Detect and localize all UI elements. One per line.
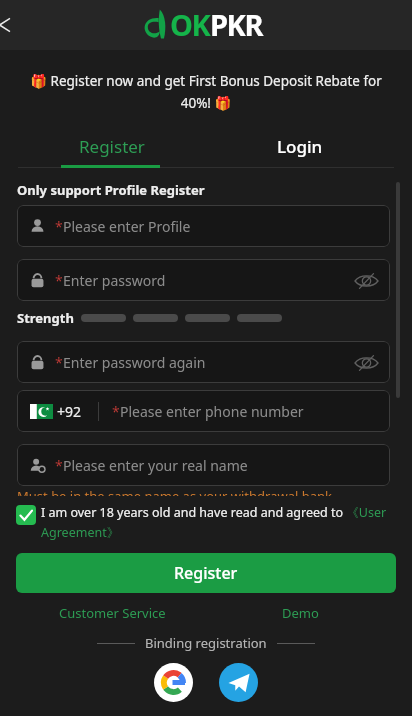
button[interactable]: * [17,444,390,486]
button[interactable]: Show password [353,272,379,289]
button[interactable]: Show password [353,354,379,371]
staticText: Strength [17,309,74,327]
staticText: * [55,217,63,236]
staticText: Binding registration [145,634,267,652]
staticText: Enter password [63,271,166,290]
button[interactable]: Sign in with Google [154,663,193,702]
button[interactable]: * [17,205,390,247]
staticText: +92 [57,402,82,421]
staticText: Please enter Profile [63,217,191,236]
staticText: Register [79,135,145,158]
button[interactable]: Sign in with Telegram [219,663,258,702]
button[interactable]: Login [206,124,394,168]
staticText: Only support Profile Register [17,181,205,199]
staticText: Customer Service [59,604,166,622]
button[interactable]: Register [18,124,206,168]
staticText: * [55,353,63,372]
staticText: OK [170,5,210,44]
staticText: Please enter your real name [63,456,248,475]
button[interactable]: * [17,259,390,301]
button[interactable]: Customer Service [18,604,206,622]
staticText: I am over 18 years old and have read and… [41,504,390,541]
staticText: Please enter phone number [120,402,304,421]
staticText: Enter password again [63,353,206,372]
button[interactable]: I am over 18 years old and have read and… [16,504,390,541]
staticText: * [55,271,63,290]
staticText: Login [277,135,323,158]
staticText: 🎁 Register now and get First Bonus Depos… [22,72,390,112]
button[interactable]: Demo [206,604,394,622]
staticText: Demo [282,604,319,622]
button[interactable]: Back [0,7,22,43]
button[interactable]: Register [16,553,396,593]
staticText: * [112,402,120,421]
button[interactable]: +92 [17,390,390,432]
staticText: Must be in the same name as your withdra… [17,487,333,496]
staticText: * [55,456,63,475]
button[interactable]: * [17,341,390,383]
staticText: Register [174,562,238,584]
staticText: PKR [210,5,263,44]
